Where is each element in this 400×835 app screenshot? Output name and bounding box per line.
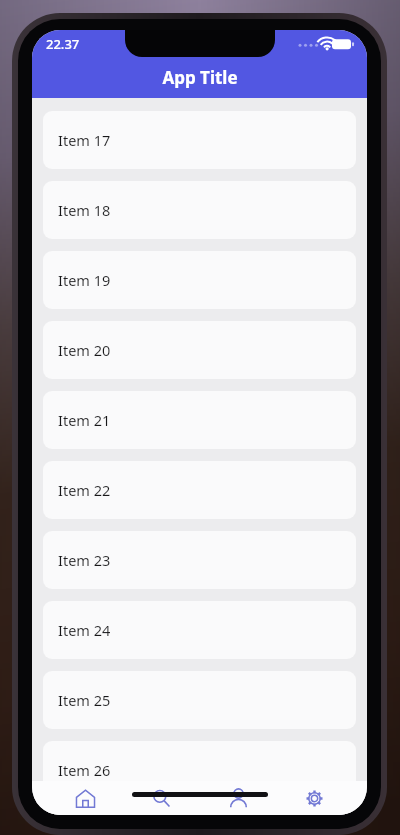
- button[interactable]: Item 18: [43, 181, 356, 239]
- staticText: Item 25: [58, 690, 111, 710]
- staticText: Item 23: [58, 550, 111, 570]
- button[interactable]: Item 19: [43, 251, 356, 309]
- staticText: Item 20: [58, 340, 111, 360]
- button[interactable]: Item 27: [43, 811, 356, 815]
- staticText: Item 26: [58, 760, 111, 780]
- staticText: Item 19: [58, 270, 111, 290]
- button[interactable]: Settings: [290, 781, 338, 815]
- button[interactable]: Item 25: [43, 671, 356, 729]
- button[interactable]: Home: [61, 781, 109, 815]
- button[interactable]: Item 21: [43, 391, 356, 449]
- button[interactable]: Item 26: [43, 741, 356, 799]
- button[interactable]: Item 17: [43, 111, 356, 169]
- staticText: Item 22: [58, 480, 111, 500]
- button[interactable]: Item 23: [43, 531, 356, 589]
- staticText: Item 17: [58, 130, 111, 150]
- staticText: 22.37: [46, 35, 80, 53]
- button[interactable]: Search: [137, 781, 185, 815]
- staticText: Item 21: [58, 410, 111, 430]
- button[interactable]: Item 22: [43, 461, 356, 519]
- button[interactable]: Item 20: [43, 321, 356, 379]
- staticText: Item 24: [58, 620, 111, 640]
- staticText: App Title: [162, 66, 238, 89]
- button[interactable]: Profile: [214, 781, 262, 815]
- button[interactable]: Item 24: [43, 601, 356, 659]
- staticText: Item 18: [58, 200, 111, 220]
